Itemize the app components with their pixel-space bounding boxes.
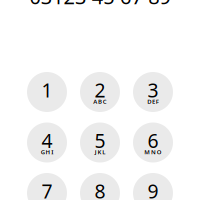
staticText: GHI	[41, 148, 53, 156]
staticText: 03123 45 67 89	[29, 0, 171, 10]
staticText: MNO	[144, 148, 162, 156]
staticText: 4	[41, 127, 52, 154]
staticText: DEF	[147, 97, 159, 106]
staticText: 1	[41, 77, 52, 103]
staticText: 9	[147, 178, 158, 200]
button[interactable]: 1	[27, 72, 67, 112]
button[interactable]: 2	[80, 72, 120, 112]
staticText: JKL	[95, 148, 105, 156]
button[interactable]: 5	[80, 122, 120, 162]
staticText: ABC	[93, 97, 107, 106]
staticText: 5	[94, 127, 105, 154]
staticText: TUV	[94, 198, 106, 200]
button[interactable]: 7	[27, 173, 67, 200]
staticText: 7	[41, 178, 52, 200]
button[interactable]: 4	[27, 122, 67, 162]
button[interactable]: 9	[133, 173, 173, 200]
button[interactable]: 3	[133, 72, 173, 112]
staticText: 8	[94, 178, 105, 200]
staticText: 3	[147, 77, 158, 103]
staticText: PQRS	[38, 198, 56, 200]
staticText: WXYZ	[143, 198, 163, 200]
staticText: 2	[94, 77, 105, 103]
button[interactable]: 6	[133, 122, 173, 162]
staticText: 6	[147, 127, 158, 154]
button[interactable]: 8	[80, 173, 120, 200]
